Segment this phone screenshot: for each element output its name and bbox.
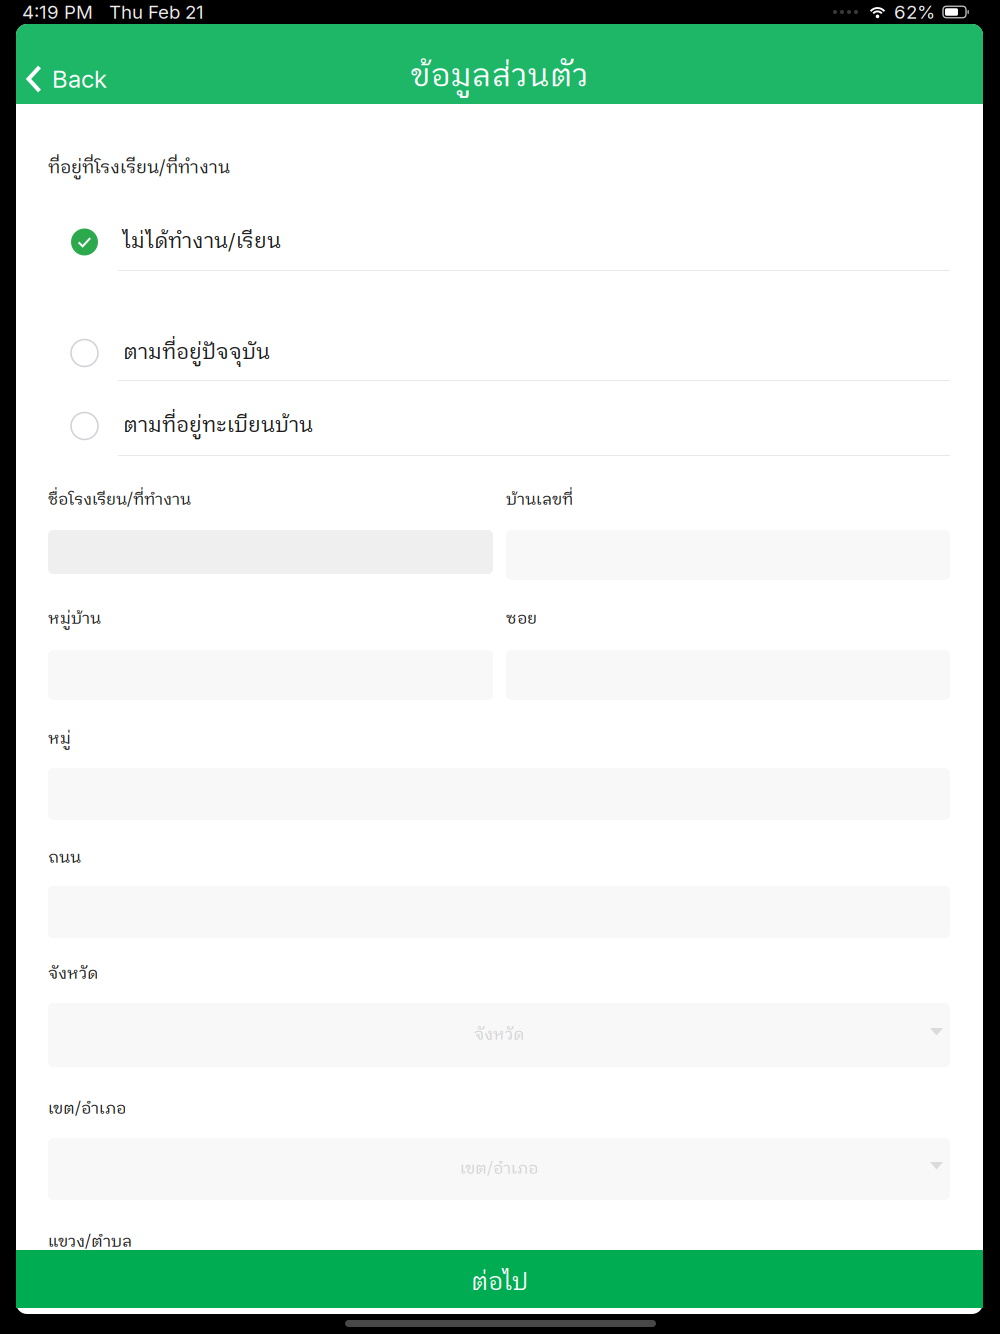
button[interactable]: ไม่ได้ทำงาน/เรียน bbox=[0, 0, 1000, 1334]
button[interactable]: ตามที่อยู่ทะเบียนบ้าน bbox=[0, 0, 1000, 1334]
staticText: บ้านเลขที่ bbox=[506, 486, 573, 514]
staticText: ไม่ได้ทำงาน/เรียน bbox=[123, 225, 281, 259]
staticText: จังหวัด bbox=[474, 1021, 524, 1049]
button[interactable]: ตามที่อยู่ปัจจุบัน bbox=[0, 0, 1000, 1334]
staticText: ข้อมูลส่วนตัว bbox=[410, 51, 588, 103]
staticText: Back bbox=[52, 64, 107, 93]
staticText: หมู่ bbox=[48, 725, 71, 753]
button[interactable]: Back bbox=[0, 0, 1000, 1334]
staticText: ที่อยู่ที่โรงเรียน/ที่ทำงาน bbox=[48, 153, 230, 183]
staticText: ถนน bbox=[48, 844, 81, 872]
staticText: 4:19 PM bbox=[22, 1, 93, 23]
staticText: หมู่บ้าน bbox=[48, 605, 101, 633]
staticText: จังหวัด bbox=[48, 960, 98, 988]
staticText: ชื่อโรงเรียน/ที่ทำงาน bbox=[48, 486, 191, 514]
staticText: แขวง/ตำบล bbox=[48, 1228, 132, 1256]
button[interactable]: ต่อไป bbox=[0, 0, 1000, 1334]
button[interactable]: เขต/อำเภอ bbox=[0, 0, 1000, 1334]
button[interactable]: จังหวัด bbox=[0, 0, 1000, 1334]
staticText: ต่อไป bbox=[471, 1263, 528, 1303]
staticText: Thu Feb 21 bbox=[109, 1, 204, 23]
staticText: ตามที่อยู่ปัจจุบัน bbox=[123, 336, 270, 370]
staticText: ซอย bbox=[506, 605, 537, 633]
staticText: เขต/อำเภอ bbox=[48, 1095, 126, 1123]
staticText: เขต/อำเภอ bbox=[460, 1155, 538, 1183]
staticText: 62% bbox=[894, 1, 935, 23]
staticText: ตามที่อยู่ทะเบียนบ้าน bbox=[123, 409, 313, 443]
